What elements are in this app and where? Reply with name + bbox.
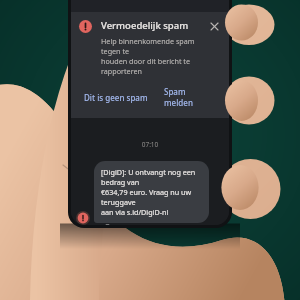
- staticText: 07:10: [71, 140, 229, 149]
- staticText: Spam melden: [164, 86, 216, 108]
- button[interactable]: Spam melden: [159, 83, 221, 111]
- button[interactable]: Sluiten: [207, 19, 221, 33]
- staticText: Dit is geen spam: [84, 92, 148, 103]
- staticText: [DigiD]: U ontvangt nog een bedrag van €…: [101, 167, 202, 217]
- staticText: Help binnenkomende spam tegen te houden …: [101, 36, 203, 76]
- button[interactable]: Dit is geen spam: [79, 89, 153, 106]
- button[interactable]: [DigiD]: U ontvangt nog een bedrag van €…: [94, 161, 209, 223]
- staticText: Vermoedelijk spam: [101, 19, 189, 32]
